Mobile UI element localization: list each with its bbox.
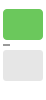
button[interactable]: Featured [3, 9, 43, 40]
